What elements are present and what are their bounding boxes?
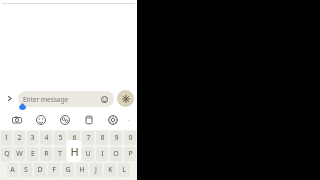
staticText: L: [122, 165, 126, 175]
staticText: Q: [4, 149, 10, 159]
button[interactable]: H: [76, 163, 88, 177]
button[interactable]: Gallery: [77, 110, 101, 130]
button[interactable]: O: [110, 147, 122, 161]
button[interactable]: More: [125, 110, 133, 130]
staticText: I: [101, 149, 104, 159]
staticText: P: [128, 149, 133, 159]
button[interactable]: 3: [27, 131, 38, 145]
button[interactable]: S: [20, 163, 32, 177]
button[interactable]: Emoji: [99, 94, 109, 104]
button[interactable]: GIF: [53, 110, 77, 130]
button[interactable]: 2: [14, 131, 25, 145]
staticText: K: [108, 165, 113, 175]
staticText: T: [58, 149, 62, 159]
button[interactable]: Q: [1, 147, 12, 161]
staticText: 8: [100, 133, 105, 143]
staticText: 0: [128, 133, 133, 143]
staticText: 5: [58, 133, 63, 143]
button[interactable]: 5: [54, 131, 66, 145]
staticText: 1: [4, 133, 9, 143]
button[interactable]: Stickers: [29, 110, 53, 130]
button[interactable]: A: [7, 163, 18, 177]
button[interactable]: E: [27, 147, 38, 161]
button[interactable]: P: [124, 147, 136, 161]
button[interactable]: W: [14, 147, 25, 161]
button[interactable]: 6: [68, 131, 80, 145]
button[interactable]: R: [40, 147, 52, 161]
button[interactable]: L: [118, 163, 130, 177]
staticText: 3: [30, 133, 35, 143]
button[interactable]: J: [90, 163, 102, 177]
staticText: 4: [44, 133, 49, 143]
staticText: F: [52, 165, 56, 175]
button[interactable]: G: [62, 163, 74, 177]
staticText: J: [95, 165, 97, 175]
staticText: W: [16, 149, 23, 159]
staticText: Y: [72, 149, 76, 159]
staticText: O: [113, 149, 119, 159]
staticText: R: [44, 149, 49, 159]
button[interactable]: 8: [96, 131, 108, 145]
button[interactable]: D: [34, 163, 46, 177]
button[interactable]: K: [104, 163, 116, 177]
staticText: H: [70, 144, 79, 159]
staticText: E: [31, 149, 35, 159]
staticText: G: [65, 165, 71, 175]
staticText: ·: [128, 116, 130, 124]
button[interactable]: Settings: [101, 110, 125, 130]
button[interactable]: T: [54, 147, 66, 161]
staticText: U: [85, 149, 91, 159]
button[interactable]: Expand: [3, 92, 16, 105]
staticText: 2: [17, 133, 22, 143]
staticText: 7: [86, 133, 91, 143]
button[interactable]: 4: [40, 131, 52, 145]
staticText: 9: [114, 133, 119, 143]
button[interactable]: Enter message: [18, 91, 114, 107]
button[interactable]: Camera: [4, 110, 29, 130]
button[interactable]: 7: [82, 131, 94, 145]
staticText: D: [37, 165, 43, 175]
button[interactable]: U: [82, 147, 94, 161]
staticText: 6: [72, 133, 77, 143]
button[interactable]: I: [96, 147, 108, 161]
staticText: H: [79, 165, 85, 175]
button[interactable]: 0: [124, 131, 136, 145]
staticText: S: [24, 165, 28, 175]
button[interactable]: 9: [110, 131, 122, 145]
button[interactable]: F: [48, 163, 60, 177]
staticText: A: [10, 165, 15, 175]
button[interactable]: Y: [68, 147, 80, 161]
button[interactable]: Send: [117, 90, 134, 107]
staticText: Enter message: [23, 95, 69, 104]
button[interactable]: 1: [1, 131, 12, 145]
